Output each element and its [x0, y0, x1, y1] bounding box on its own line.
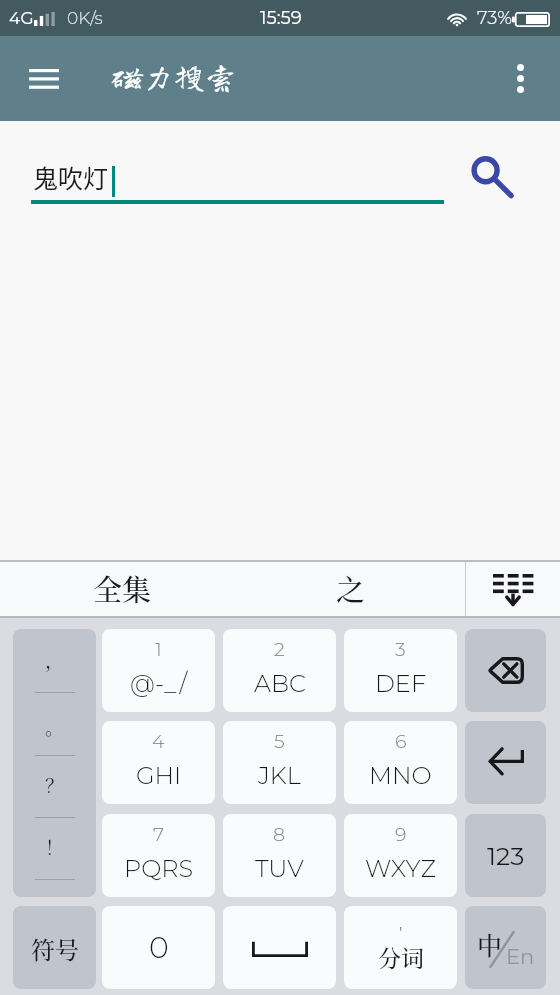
staticText: 9 [395, 823, 407, 846]
staticText: ？ [45, 771, 65, 798]
button[interactable]: ' [344, 906, 457, 989]
button[interactable]: Menu [0, 36, 87, 121]
button[interactable]: Backspace [465, 629, 546, 712]
staticText: WXYZ [365, 854, 437, 883]
staticText: En [506, 944, 535, 970]
button[interactable]: 5 [223, 721, 336, 804]
staticText: 3 [395, 638, 406, 661]
staticText: ' [399, 921, 403, 941]
button[interactable]: 6 [344, 721, 457, 804]
staticText: ， [45, 646, 65, 673]
staticText: MNO [369, 761, 432, 790]
staticText: 1 [155, 638, 162, 661]
staticText: TUV [255, 854, 304, 883]
staticText: 全集 [93, 568, 152, 610]
button[interactable]: 2 [223, 629, 336, 712]
staticText: JKL [258, 761, 301, 790]
staticText: 之 [336, 568, 366, 610]
button[interactable]: 3 [344, 629, 457, 712]
staticText: 4 [152, 730, 165, 753]
staticText: 6 [395, 730, 407, 753]
staticText: 15:59 [260, 7, 302, 29]
button[interactable]: 之 [238, 562, 463, 616]
staticText: 123 [487, 841, 525, 871]
button[interactable]: Switch input language [465, 906, 546, 989]
staticText: 分词 [378, 941, 424, 974]
button[interactable]: 9 [344, 814, 457, 897]
button[interactable]: 全集 [6, 562, 238, 616]
staticText: 。 [45, 713, 65, 740]
staticText: DEF [375, 669, 427, 698]
staticText: 8 [273, 823, 286, 846]
staticText: 鬼吹灯 [33, 159, 109, 195]
button[interactable]: Search [458, 142, 520, 204]
staticText: ！ [45, 833, 65, 860]
staticText: 5 [274, 730, 285, 753]
button[interactable]: Space [223, 906, 336, 989]
button[interactable]: 1 [102, 629, 215, 712]
button[interactable]: More options [480, 36, 560, 121]
button[interactable]: ， [13, 629, 96, 897]
staticText: 0K/s [67, 8, 103, 29]
button[interactable]: 0 [102, 906, 215, 989]
button[interactable]: 123 [465, 814, 546, 897]
button[interactable]: Enter [465, 721, 546, 804]
staticText: 中 [477, 926, 503, 962]
button[interactable]: Expand candidates [466, 562, 560, 616]
staticText: 73% [477, 7, 512, 29]
staticText: PQRS [124, 854, 194, 883]
button[interactable]: 7 [102, 814, 215, 897]
staticText: ABC [254, 669, 306, 698]
staticText: 7 [153, 823, 165, 846]
button[interactable]: 符号 [13, 906, 96, 989]
staticText: GHI [136, 761, 182, 790]
button[interactable]: 8 [223, 814, 336, 897]
staticText: @-_/ [130, 669, 188, 698]
staticText: 磁力搜索 [112, 61, 236, 92]
staticText: 4G [9, 8, 34, 29]
staticText: 符号 [31, 931, 79, 965]
staticText: 0 [149, 929, 169, 966]
staticText: 2 [274, 638, 285, 661]
button[interactable]: 4 [102, 721, 215, 804]
